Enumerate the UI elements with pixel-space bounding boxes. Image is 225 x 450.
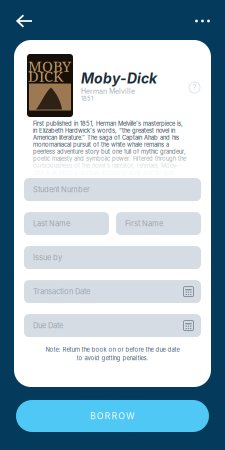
staticText: First Name (125, 219, 163, 228)
staticText: Herman Melville (81, 87, 135, 95)
staticText: American literature.” The saga of Captai… (33, 134, 179, 141)
staticText: Issue by (33, 253, 62, 262)
staticText: in Elizabeth Hardwick's words, “the grea… (33, 127, 175, 134)
staticText: BORROW (90, 411, 135, 421)
staticText: poetic majesty and symbolic power. Filte… (33, 155, 186, 162)
staticText: Student Number (33, 185, 90, 194)
button[interactable]: More options (188, 8, 217, 34)
staticText: 1851 (81, 95, 93, 102)
staticText: First published in 1851, Herman Melville… (33, 120, 183, 127)
button[interactable]: Student Number (24, 178, 201, 201)
staticText: Moby-Dick (81, 70, 157, 87)
button[interactable]: Back (9, 8, 40, 34)
staticText: to avoid getting penalties. (76, 355, 148, 362)
staticText: Note: Return the book on or before the d… (45, 346, 179, 353)
button[interactable]: First Name (116, 212, 201, 235)
button[interactable]: Help (189, 82, 200, 93)
staticText: Due Date (33, 321, 63, 330)
button[interactable]: Last Name (24, 212, 109, 235)
staticText: peerless adventure story but one full of… (33, 148, 186, 155)
button[interactable]: Due Date (24, 314, 201, 337)
button[interactable]: Transaction Date (24, 280, 201, 303)
button[interactable]: BORROW (16, 400, 209, 432)
staticText: monomaniacal pursuit of the white whale … (33, 141, 169, 148)
staticText: Transaction Date (33, 287, 90, 296)
staticText: ? (192, 83, 196, 92)
staticText: consciousness of the novel's narrator, I… (33, 162, 179, 169)
staticText: Last Name (33, 219, 70, 228)
button[interactable]: Issue by (24, 246, 201, 269)
staticText: DICK (28, 66, 63, 86)
staticText: MOBY (28, 56, 71, 76)
